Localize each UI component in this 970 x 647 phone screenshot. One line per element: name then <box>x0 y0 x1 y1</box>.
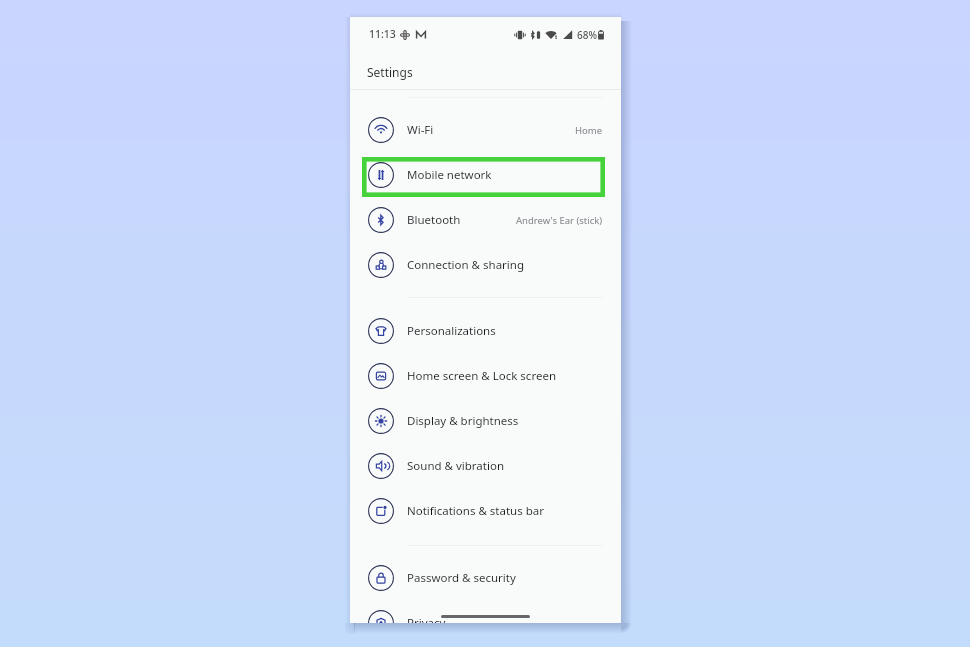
staticText: Home <box>575 124 603 137</box>
button[interactable]: Sound & vibration <box>350 444 621 488</box>
staticText: Andrew's Ear (stick) <box>516 214 603 227</box>
staticText: Home screen & Lock screen <box>407 368 556 384</box>
staticText: Privacy <box>407 615 446 623</box>
staticText: 11:13 <box>369 27 396 41</box>
button[interactable]: Connection & sharing <box>350 243 621 287</box>
button[interactable]: Home screen & Lock screen <box>350 354 621 398</box>
button[interactable]: Wi-Fi <box>350 108 621 152</box>
staticText: Password & security <box>407 570 516 586</box>
button[interactable]: Home <box>430 604 541 623</box>
button[interactable]: Mobile network <box>350 153 621 197</box>
staticText: Mobile network <box>407 167 492 183</box>
button[interactable]: Bluetooth <box>350 198 621 242</box>
staticText: Wi-Fi <box>407 122 434 138</box>
staticText: Display & brightness <box>407 413 519 429</box>
staticText: Connection & sharing <box>407 257 524 273</box>
staticText: 68% <box>577 28 597 42</box>
staticText: Notifications & status bar <box>407 503 544 519</box>
button[interactable]: Personalizations <box>350 309 621 353</box>
button[interactable]: Notifications & status bar <box>350 489 621 533</box>
staticText: Bluetooth <box>407 212 461 228</box>
button[interactable]: Display & brightness <box>350 399 621 443</box>
button[interactable]: Password & security <box>350 556 621 600</box>
button[interactable]: Privacy <box>350 601 621 623</box>
staticText: Settings <box>367 64 413 80</box>
staticText: Sound & vibration <box>407 458 504 474</box>
staticText: Personalizations <box>407 323 496 339</box>
